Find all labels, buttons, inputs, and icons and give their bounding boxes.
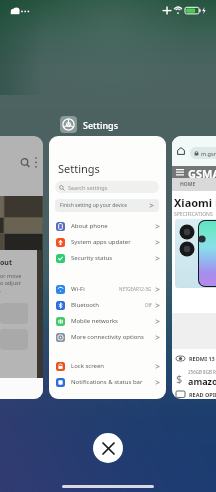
staticText: Xiaomi Redmi 13	[174, 195, 216, 210]
staticText: GSMArena	[188, 166, 216, 178]
button[interactable]: m.gsmarena.c	[172, 136, 216, 399]
button[interactable]: Mobile networks	[49, 313, 166, 329]
button[interactable]: Bluetooth	[49, 297, 166, 313]
staticText: Search settings	[68, 184, 108, 191]
button[interactable]: System apps updater	[49, 234, 166, 250]
button[interactable]: Wi-Fi	[49, 281, 166, 297]
staticText: About phone	[71, 222, 108, 230]
staticText: Lock screen	[71, 362, 105, 370]
staticText: Security status	[71, 254, 113, 262]
staticText: Mobile networks	[71, 317, 118, 325]
staticText: or move o adjust .	[0, 272, 22, 293]
button[interactable]: Settings	[49, 113, 119, 136]
staticText: 256GB 8GB RAM	[188, 369, 216, 375]
staticText: Off	[145, 302, 152, 308]
staticText: HOME	[180, 181, 196, 188]
button[interactable]: out	[0, 136, 43, 399]
button[interactable]: Close all	[93, 433, 123, 463]
staticText: amazon.nl	[188, 375, 216, 387]
button[interactable]: Security status	[49, 250, 166, 266]
staticText: $	[176, 371, 183, 386]
button[interactable]: About phone	[49, 218, 166, 234]
staticText: REDMI 13 HANDS-ON	[189, 355, 216, 362]
staticText: System apps updater	[71, 238, 131, 246]
button[interactable]: Finish setting up your device	[55, 199, 159, 212]
button[interactable]: Search settings	[55, 181, 159, 193]
staticText: Notifications & status bar	[71, 378, 143, 386]
staticText: SPECIFICATIONS	[174, 211, 213, 218]
button[interactable]: More connectivity options	[49, 329, 166, 345]
staticText: Wi-Fi	[71, 285, 85, 293]
staticText: Settings	[83, 119, 119, 131]
staticText: m.gsmarena.c	[201, 150, 216, 157]
staticText: READ OPINIONS	[189, 391, 216, 398]
button[interactable]: Lock screen	[49, 358, 166, 374]
staticText: Settings	[58, 161, 100, 176]
staticText: Finish setting up your device	[60, 202, 127, 209]
staticText: More connectivity options	[71, 333, 144, 341]
staticText: NETGEAR12-5G	[119, 286, 152, 292]
staticText: Bluetooth	[71, 301, 99, 309]
button[interactable]: Notifications & status bar	[49, 374, 166, 390]
staticText: out	[0, 258, 12, 268]
